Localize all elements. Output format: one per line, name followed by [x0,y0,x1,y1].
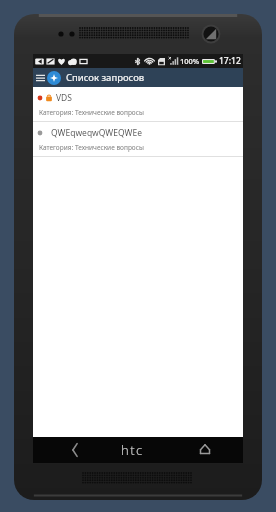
button[interactable]: Back [63,438,87,462]
button[interactable]: Home [193,438,217,462]
staticText: VDS [56,92,72,104]
staticText: htc [121,441,144,459]
staticText: Список запросов [66,71,145,84]
staticText: Категория: Технические вопросы [39,143,144,152]
staticText: 17:12 [219,55,241,67]
staticText: QWEqweqwQWEQWEe [51,127,142,139]
button[interactable]: VDS [33,87,243,122]
button[interactable]: QWEqweqwQWEQWEe [33,122,243,157]
staticText: 100% [180,56,200,66]
staticText: Категория: Технические вопросы [39,108,144,117]
button[interactable]: Open navigation drawer [33,68,47,87]
